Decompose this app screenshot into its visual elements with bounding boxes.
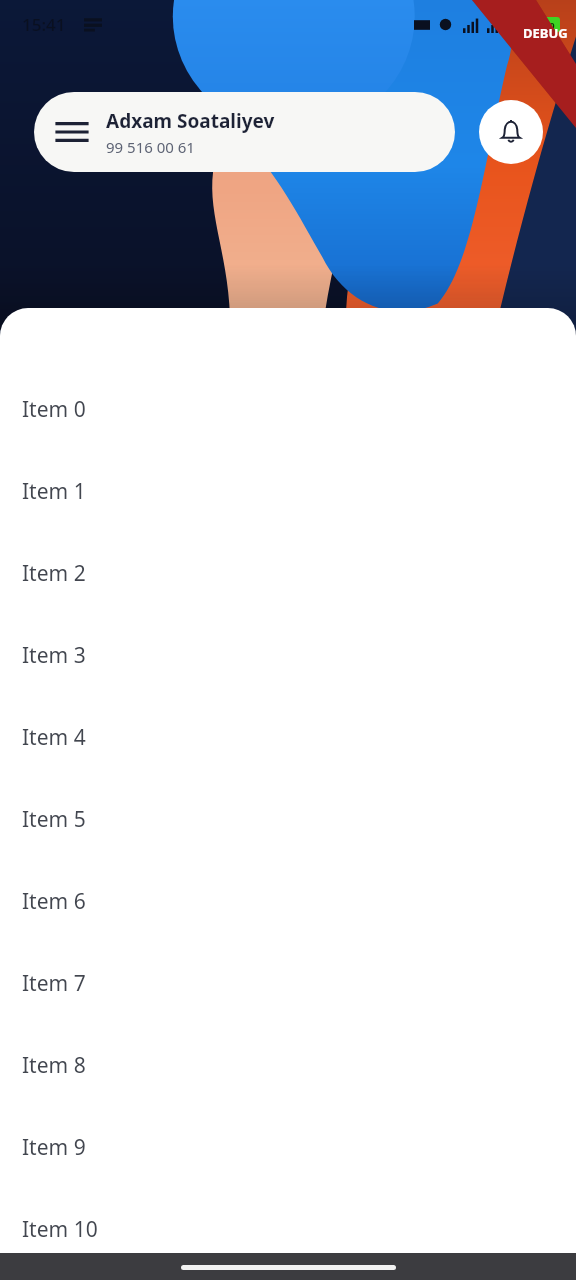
staticText: Item 6 bbox=[22, 887, 86, 916]
staticText: Item 10 bbox=[22, 1215, 98, 1244]
button[interactable]: Item 4 bbox=[0, 696, 576, 778]
button[interactable]: Item 8 bbox=[0, 1024, 576, 1106]
button[interactable]: Item 2 bbox=[0, 532, 576, 614]
button[interactable]: Menu bbox=[50, 110, 94, 154]
staticText: Item 5 bbox=[22, 805, 86, 834]
staticText: Item 4 bbox=[22, 723, 86, 752]
staticText: 100 bbox=[539, 19, 555, 31]
button[interactable]: Item 9 bbox=[0, 1106, 576, 1188]
button[interactable]: Item 6 bbox=[0, 860, 576, 942]
button[interactable]: Item 0 bbox=[0, 368, 576, 450]
staticText: Item 0 bbox=[22, 395, 86, 424]
button[interactable]: Notifications bbox=[479, 100, 543, 164]
button[interactable]: Item 7 bbox=[0, 942, 576, 1024]
staticText: Item 7 bbox=[22, 969, 86, 998]
button[interactable]: Item 1 bbox=[0, 450, 576, 532]
staticText: Adxam Soataliyev bbox=[106, 108, 275, 134]
staticText: 15:41 bbox=[22, 13, 66, 36]
staticText: 99 516 00 61 bbox=[106, 137, 195, 157]
staticText: Item 1 bbox=[22, 477, 86, 506]
button[interactable]: Item 10 bbox=[0, 1188, 576, 1270]
button[interactable]: Item 5 bbox=[0, 778, 576, 860]
staticText: DEBUG bbox=[523, 24, 568, 42]
staticText: Item 2 bbox=[22, 559, 86, 588]
staticText: Item 3 bbox=[22, 641, 86, 670]
staticText: Item 8 bbox=[22, 1051, 86, 1080]
button[interactable]: Menu bbox=[34, 92, 455, 172]
staticText: Item 9 bbox=[22, 1133, 86, 1162]
button[interactable]: Item 3 bbox=[0, 614, 576, 696]
